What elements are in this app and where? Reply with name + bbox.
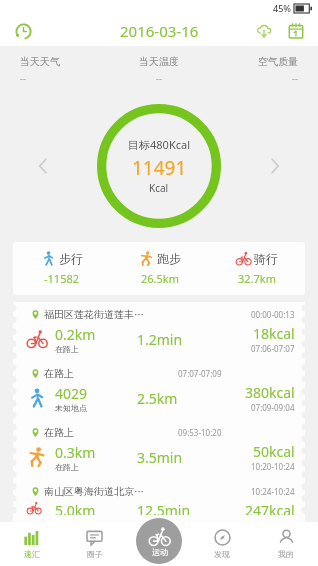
button[interactable]: Previous day bbox=[28, 151, 58, 181]
staticText: 00:00-00:13 bbox=[251, 309, 295, 320]
staticText: 09:53-10:20 bbox=[178, 427, 222, 438]
button[interactable]: 2016-03-16 bbox=[120, 21, 199, 41]
staticText: 当天温度 bbox=[139, 55, 179, 68]
staticText: 在路上 bbox=[55, 462, 79, 472]
button[interactable]: Start workout bbox=[136, 518, 182, 564]
staticText: 在路上 bbox=[44, 367, 74, 380]
staticText: 2.5km bbox=[137, 389, 178, 408]
staticText: -- bbox=[292, 72, 298, 84]
staticText: 11491 bbox=[132, 155, 187, 181]
staticText: 骑行 bbox=[254, 251, 278, 266]
staticText: 步行 bbox=[59, 251, 83, 266]
staticText: 18kcal bbox=[253, 324, 295, 343]
staticText: 1.2min bbox=[137, 330, 183, 349]
button[interactable]: 圈子 bbox=[63, 522, 126, 566]
staticText: 3.5min bbox=[137, 448, 183, 467]
staticText: 10:20-10:24 bbox=[251, 461, 295, 472]
staticText: 07:06-07:07 bbox=[251, 343, 295, 354]
staticText: 10:24-10:24 bbox=[251, 486, 295, 497]
button[interactable]: 在路上 bbox=[13, 361, 305, 420]
staticText: 45% bbox=[273, 2, 291, 14]
button[interactable]: 我的 bbox=[254, 522, 318, 566]
staticText: 目标480Kcal bbox=[128, 137, 190, 152]
staticText: 12.5min bbox=[137, 501, 191, 515]
staticText: 福田区莲花街道莲丰雅苑二期 bbox=[44, 308, 147, 321]
staticText: 在路上 bbox=[44, 426, 74, 439]
button[interactable]: 在路上 bbox=[13, 420, 305, 479]
staticText: 发现 bbox=[214, 549, 230, 559]
staticText: -11582 bbox=[44, 271, 80, 286]
staticText: 0.2km bbox=[55, 325, 96, 344]
staticText: 26.5km bbox=[141, 271, 179, 286]
staticText: Kcal bbox=[149, 181, 169, 195]
button[interactable]: Download bbox=[251, 18, 277, 44]
button[interactable]: 跑步 bbox=[111, 251, 208, 286]
staticText: 4029 bbox=[55, 384, 88, 403]
button[interactable]: 骑行 bbox=[208, 251, 305, 286]
button[interactable]: 步行 bbox=[13, 251, 111, 286]
staticText: 247kcal bbox=[245, 501, 295, 515]
staticText: 南山区粤海街道北京大学香港科技大学深... bbox=[44, 485, 147, 498]
staticText: 07:09-09:04 bbox=[251, 402, 295, 413]
staticText: -- bbox=[156, 72, 162, 84]
staticText: 32.7km bbox=[238, 271, 276, 286]
button[interactable]: 空气质量 bbox=[212, 55, 312, 84]
button[interactable]: 南山区粤海街道北京大学香港科技大学深... bbox=[13, 479, 305, 522]
staticText: 07:07-07:09 bbox=[178, 368, 222, 379]
button[interactable]: 速汇 bbox=[0, 522, 63, 566]
staticText: 在路上 bbox=[55, 344, 79, 354]
staticText: 50kcal bbox=[253, 442, 295, 461]
button[interactable]: History bbox=[10, 18, 36, 44]
staticText: 未知地点 bbox=[55, 403, 87, 413]
button[interactable]: 福田区莲花街道莲丰雅苑二期 bbox=[13, 302, 305, 361]
staticText: 380kcal bbox=[245, 383, 295, 402]
button[interactable]: 发现 bbox=[190, 522, 254, 566]
staticText: 2016-03-16 bbox=[120, 21, 199, 41]
staticText: 当天天气 bbox=[20, 55, 60, 68]
staticText: 圈子 bbox=[87, 549, 103, 559]
button[interactable]: 当天温度 bbox=[106, 55, 212, 84]
button[interactable]: Next day bbox=[260, 151, 290, 181]
button[interactable]: Calendar bbox=[283, 18, 309, 44]
staticText: 空气质量 bbox=[258, 55, 298, 68]
staticText: 跑步 bbox=[157, 251, 181, 266]
staticText: 我的 bbox=[278, 549, 294, 559]
staticText: -- bbox=[20, 72, 26, 84]
staticText: 0.3km bbox=[55, 443, 96, 462]
button[interactable]: 当天天气 bbox=[6, 55, 106, 84]
staticText: 速汇 bbox=[24, 549, 40, 559]
staticText: 5.0km bbox=[55, 501, 96, 515]
staticText: 运动 bbox=[152, 547, 168, 557]
